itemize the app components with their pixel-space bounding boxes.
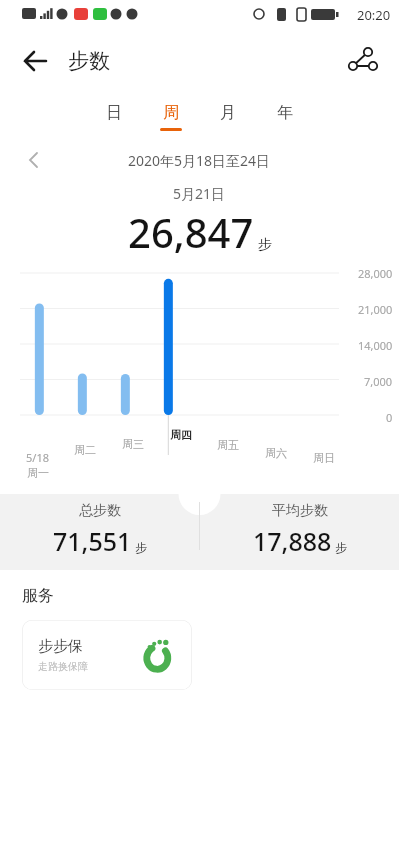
- button[interactable]: 周: [153, 92, 189, 142]
- button[interactable]: 平均步数: [200, 502, 399, 558]
- button[interactable]: 年: [267, 92, 303, 142]
- staticText: 月: [220, 103, 236, 123]
- staticText: 步: [135, 540, 147, 555]
- staticText: 平均步数: [272, 502, 328, 520]
- button[interactable]: Share: [341, 39, 385, 83]
- staticText: 7,000: [364, 374, 393, 389]
- staticText: 周六: [265, 446, 287, 460]
- staticText: 周日: [313, 451, 335, 465]
- staticText: 周三: [122, 437, 144, 451]
- staticText: 17,888: [253, 524, 332, 558]
- staticText: 周四: [170, 428, 192, 442]
- button[interactable]: Back: [14, 39, 58, 83]
- staticText: 20:20: [357, 6, 391, 24]
- button[interactable]: 月: [210, 92, 246, 142]
- staticText: 服务: [22, 586, 54, 606]
- staticText: 步: [258, 236, 272, 254]
- button[interactable]: 总步数: [0, 502, 199, 558]
- staticText: 步步保: [38, 637, 83, 656]
- button[interactable]: 步步保: [22, 620, 192, 690]
- staticText: 步数: [68, 48, 110, 74]
- staticText: 走路换保障: [38, 660, 88, 673]
- staticText: 周: [163, 103, 179, 123]
- staticText: 14,000: [358, 338, 393, 353]
- staticText: 周一: [27, 466, 49, 480]
- staticText: 步: [335, 540, 347, 555]
- staticText: 5/18: [26, 450, 49, 465]
- staticText: 2020年5月18日至24日: [128, 151, 271, 170]
- staticText: 21,000: [358, 302, 393, 317]
- staticText: 周五: [217, 438, 239, 452]
- staticText: 0: [386, 410, 393, 425]
- staticText: 28,000: [358, 266, 393, 281]
- button[interactable]: 日: [96, 92, 132, 142]
- staticText: 周二: [74, 443, 96, 457]
- staticText: 总步数: [79, 502, 121, 520]
- staticText: 年: [277, 103, 293, 123]
- staticText: 71,551: [53, 524, 132, 558]
- button[interactable]: Previous week: [18, 144, 50, 176]
- staticText: 26,847: [128, 205, 254, 259]
- staticText: 5月21日: [173, 184, 226, 203]
- staticText: 日: [106, 103, 122, 123]
